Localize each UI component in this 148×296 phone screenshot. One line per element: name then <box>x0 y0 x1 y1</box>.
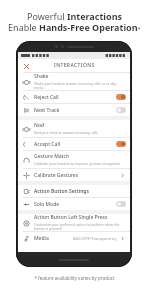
staticText: Calibrate your headset to improve gestur… <box>34 161 121 166</box>
staticText: Nod your head to answer incoming calls <box>34 130 98 135</box>
button[interactable]: Shake <box>18 73 130 90</box>
staticText: Solo Mode <box>34 201 60 208</box>
button[interactable]: Toggle off <box>116 107 126 113</box>
button[interactable]: Next Track <box>18 104 130 116</box>
staticText: Nod <box>34 122 45 129</box>
staticText: Gesture Match <box>34 153 70 160</box>
staticText: Reject Call <box>34 94 59 101</box>
button[interactable]: Solo Mode <box>18 198 130 210</box>
button[interactable]: Media <box>18 232 130 244</box>
staticText: Shake <box>34 73 49 80</box>
staticText: Accept Call <box>34 141 61 148</box>
button[interactable]: Open <box>119 235 126 242</box>
button[interactable]: Calibrate Gestures <box>18 169 130 181</box>
button[interactable]: Toggle on <box>116 141 126 147</box>
button[interactable]: Open <box>119 172 126 179</box>
staticText: INTERACTIONS <box>54 62 95 69</box>
staticText: Action Button Settings <box>34 188 89 195</box>
button[interactable]: Close <box>21 61 31 71</box>
staticText: Next Track <box>34 107 60 114</box>
staticText: Calibrate Gestures <box>34 172 79 179</box>
button[interactable]: Accept Call <box>18 138 130 150</box>
button[interactable]: Nod <box>18 120 130 137</box>
button[interactable]: Action Button Left Single Press <box>18 214 130 231</box>
button[interactable]: Gesture Match <box>18 151 130 168</box>
button[interactable]: Reject Call <box>18 91 130 103</box>
staticText: * feature availability varies by product <box>34 275 115 281</box>
button[interactable]: Toggle on <box>116 94 126 100</box>
staticText: Shake your head to answer incoming calls… <box>34 81 123 90</box>
staticText: Media <box>34 235 49 242</box>
staticText: ANC/OFF/Transparency <box>73 236 117 241</box>
staticText: Customize your preferred action to perfo… <box>34 222 123 231</box>
staticText: Action Button Left Single Press <box>34 214 108 221</box>
staticText: Powerful Interactions Enable Hands-Free … <box>8 10 141 34</box>
button[interactable]: Toggle off <box>116 201 126 207</box>
button[interactable]: Action Button Settings <box>18 185 130 197</box>
